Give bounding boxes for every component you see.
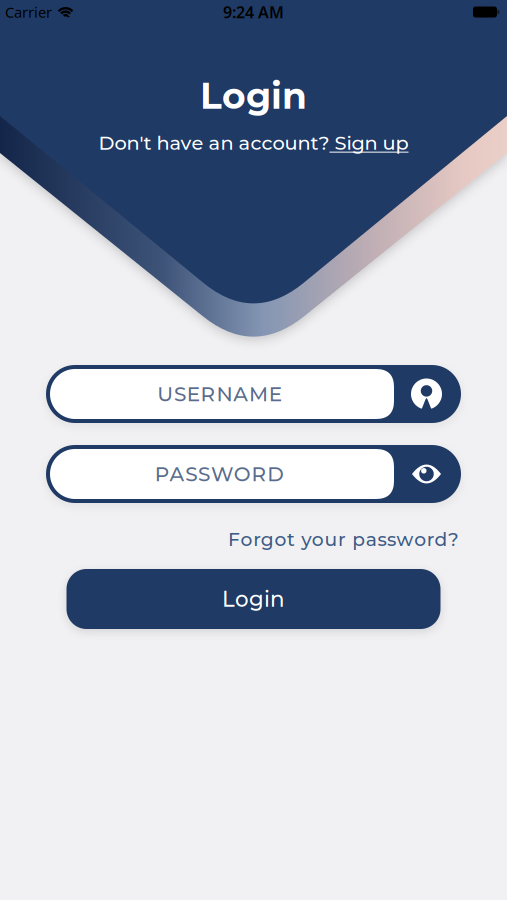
button[interactable]: Don't have an account? Sign up bbox=[98, 131, 408, 155]
staticText: Login bbox=[200, 74, 307, 118]
staticText: 9:24 AM bbox=[223, 1, 284, 23]
staticText: Forgot your password? bbox=[228, 528, 459, 551]
staticText: Don't have an account? Sign up bbox=[98, 131, 408, 155]
button[interactable]: Forgot your password? bbox=[228, 528, 459, 551]
staticText: Login bbox=[222, 586, 285, 612]
button[interactable]: USERNAME bbox=[46, 365, 461, 423]
button[interactable]: Login bbox=[66, 569, 440, 629]
button[interactable]: PASSWORD bbox=[46, 445, 461, 503]
staticText: PASSWORD bbox=[155, 462, 284, 486]
staticText: USERNAME bbox=[157, 382, 282, 406]
staticText: Carrier bbox=[5, 2, 52, 22]
